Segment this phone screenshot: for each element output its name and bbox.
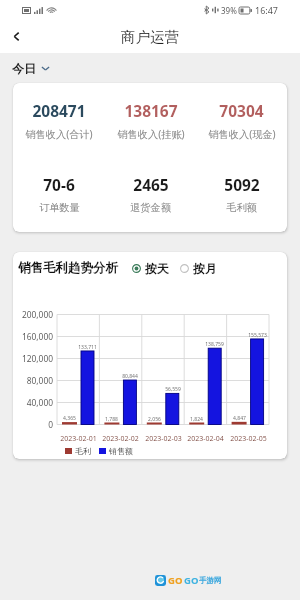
staticText: 销售收入(合计) [25, 127, 93, 141]
staticText: 138,759 [205, 341, 224, 348]
staticText: 2,056 [148, 416, 161, 423]
staticText: 2023-02-03 [145, 434, 182, 444]
staticText: 商户运营 [121, 28, 179, 46]
button[interactable]: Back [0, 20, 33, 53]
staticText: 销售收入(挂账) [117, 127, 185, 141]
staticText: 2023-02-04 [187, 434, 224, 444]
staticText: GO [184, 574, 199, 587]
staticText: 200,000 [21, 309, 53, 320]
staticText: 退货金额 [130, 201, 171, 214]
staticText: 56,559 [165, 386, 181, 393]
staticText: 0 [48, 419, 53, 430]
button[interactable]: 2465 [105, 174, 196, 214]
button[interactable]: 今日 [0, 53, 300, 83]
staticText: 2023-02-02 [102, 434, 139, 444]
staticText: 销售额 [109, 446, 133, 456]
button[interactable]: 5092 [196, 174, 287, 214]
staticText: 4,847 [233, 415, 246, 422]
staticText: 1,824 [190, 416, 203, 423]
staticText: 70-6 [43, 174, 75, 195]
staticText: 16:47 [255, 4, 279, 16]
staticText: 155,573 [248, 332, 267, 339]
staticText: 40,000 [26, 397, 53, 408]
staticText: 2023-02-01 [60, 434, 97, 444]
button[interactable]: 按天 [132, 261, 169, 276]
staticText: 39% [221, 5, 237, 16]
staticText: GO [168, 574, 183, 587]
staticText: 120,000 [21, 353, 53, 364]
staticText: 手游网 [199, 576, 222, 585]
button[interactable]: 按月 [180, 261, 217, 276]
staticText: 订单数量 [39, 201, 80, 214]
staticText: 2023-02-05 [230, 434, 267, 444]
staticText: 133,711 [78, 344, 97, 351]
button[interactable]: 70304 [196, 100, 287, 141]
staticText: 160,000 [21, 331, 53, 342]
staticText: 毛利 [75, 446, 91, 456]
staticText: 按月 [193, 261, 217, 276]
staticText: 1,788 [105, 416, 118, 423]
staticText: 毛利额 [226, 201, 257, 214]
staticText: 2465 [133, 174, 169, 195]
staticText: 今日 [12, 61, 36, 76]
staticText: 70304 [219, 100, 264, 121]
staticText: 按天 [145, 261, 169, 276]
staticText: 208471 [32, 100, 86, 121]
staticText: 5092 [224, 174, 260, 195]
button[interactable]: 138167 [105, 100, 196, 141]
button[interactable]: 70-6 [13, 174, 105, 214]
staticText: 销售毛利趋势分析 [18, 260, 118, 276]
staticText: 销售收入(现金) [208, 127, 276, 141]
staticText: 80,000 [26, 375, 53, 386]
staticText: 138167 [124, 100, 178, 121]
staticText: 80,844 [122, 373, 138, 380]
button[interactable]: 208471 [13, 100, 105, 141]
staticText: 4,365 [63, 415, 76, 422]
